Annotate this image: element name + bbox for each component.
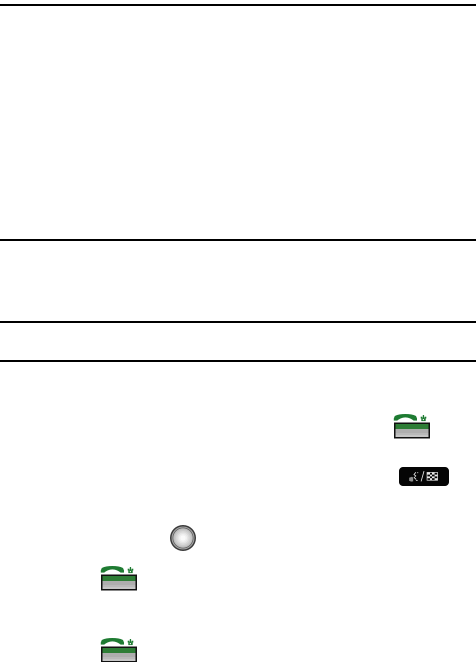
button[interactable]: Sphere xyxy=(170,525,196,551)
button[interactable]: Landscape image xyxy=(101,565,137,589)
button[interactable]: Flags xyxy=(399,467,449,486)
button[interactable]: Landscape image xyxy=(394,413,430,437)
button[interactable]: Landscape image xyxy=(101,637,137,661)
